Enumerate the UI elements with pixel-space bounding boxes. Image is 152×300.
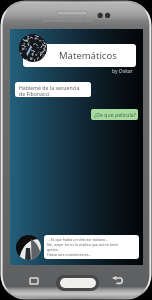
staticText: Hablemé de la secuencia de Fibonacci. bbox=[19, 84, 80, 97]
button[interactable]: Group photo bbox=[19, 34, 47, 62]
staticText: ¿De que película? bbox=[94, 111, 136, 118]
button[interactable]: Recent apps bbox=[26, 273, 42, 289]
button[interactable]: Home bbox=[56, 275, 99, 291]
staticText: by Oskar bbox=[112, 68, 133, 75]
staticText: ... Es que habla un director italiano...… bbox=[47, 237, 119, 257]
staticText: www.vozactualizada.com bbox=[43, 18, 94, 23]
button[interactable]: Back bbox=[109, 272, 125, 288]
button[interactable]: Contact photo bbox=[16, 235, 41, 260]
staticText: Matemáticos bbox=[59, 49, 117, 62]
button[interactable]: Matemáticos bbox=[23, 44, 136, 67]
